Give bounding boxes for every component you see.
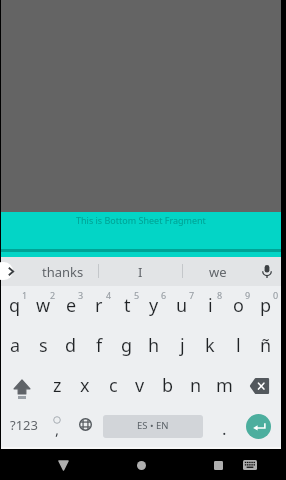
staticText: u	[176, 293, 188, 318]
button[interactable]: w	[29, 286, 57, 326]
button[interactable]: .	[208, 406, 236, 447]
staticText: 8	[217, 289, 223, 301]
button[interactable]: Switch keyboard	[239, 454, 261, 476]
staticText: s	[39, 333, 48, 358]
button[interactable]: k	[196, 326, 224, 366]
button[interactable]: Backspace	[238, 366, 280, 406]
button[interactable]: ñ	[252, 326, 280, 366]
button[interactable]: x	[71, 366, 99, 406]
staticText: d	[65, 333, 77, 358]
button[interactable]: a	[1, 326, 29, 366]
staticText: 6	[161, 289, 167, 301]
staticText: 5	[134, 289, 140, 301]
staticText: a	[10, 333, 21, 358]
staticText: i	[208, 293, 213, 318]
button[interactable]: c	[99, 366, 127, 406]
button[interactable]: t	[113, 286, 141, 326]
button[interactable]: we	[182, 257, 253, 286]
staticText: ñ	[260, 333, 272, 358]
staticText: o	[233, 293, 244, 318]
staticText: h	[148, 333, 160, 358]
staticText: 9	[245, 289, 251, 301]
button[interactable]: thanks	[27, 257, 98, 286]
staticText: n	[190, 373, 202, 398]
button[interactable]: ES • EN	[103, 415, 203, 438]
staticText: I	[138, 263, 143, 281]
button[interactable]: Expand suggestions	[1, 257, 23, 286]
button[interactable]: ?123	[1, 406, 43, 447]
button[interactable]: g	[113, 326, 141, 366]
button[interactable]: I	[98, 257, 182, 286]
button[interactable]: v	[126, 366, 154, 406]
button[interactable]: n	[182, 366, 210, 406]
button[interactable]: l	[224, 326, 252, 366]
staticText: 1	[22, 289, 28, 301]
staticText: This is Bottom Sheet Fragment	[76, 214, 206, 226]
staticText: c	[109, 373, 118, 398]
button[interactable]: Change language	[71, 404, 99, 445]
button[interactable]: j	[168, 326, 196, 366]
button[interactable]: Home	[130, 454, 152, 476]
staticText: f	[96, 333, 103, 358]
staticText: 2	[50, 289, 56, 301]
button[interactable]: y	[140, 286, 168, 326]
staticText: e	[66, 293, 77, 318]
staticText: g	[121, 333, 133, 358]
button[interactable]: p	[252, 286, 280, 326]
staticText: j	[180, 333, 185, 358]
staticText: z	[53, 373, 62, 398]
button[interactable]: o	[224, 286, 252, 326]
button[interactable]: Shift	[1, 366, 43, 406]
button[interactable]: u	[168, 286, 196, 326]
staticText: .	[222, 417, 227, 440]
staticText: ?123	[10, 416, 38, 434]
button[interactable]: h	[140, 326, 168, 366]
button[interactable]: s	[29, 326, 57, 366]
staticText: m	[216, 373, 233, 398]
staticText: ,	[55, 419, 60, 439]
staticText: w	[36, 293, 51, 318]
staticText: k	[205, 333, 215, 358]
button[interactable]: b	[154, 366, 182, 406]
staticText: 0	[273, 289, 279, 301]
staticText: p	[260, 293, 272, 318]
button[interactable]: Enter	[236, 406, 281, 447]
button[interactable]: r	[85, 286, 113, 326]
button[interactable]: Recents	[207, 454, 229, 476]
button[interactable]: d	[57, 326, 85, 366]
button[interactable]: Back	[52, 454, 74, 476]
button[interactable]: q	[1, 286, 29, 326]
staticText: 7	[189, 289, 195, 301]
button[interactable]: Voice input	[253, 257, 281, 286]
staticText: q	[9, 293, 21, 318]
staticText: we	[209, 263, 227, 281]
staticText: v	[135, 373, 145, 398]
button[interactable]: f	[85, 326, 113, 366]
staticText: b	[162, 373, 174, 398]
button[interactable]: i	[196, 286, 224, 326]
staticText: 4	[106, 289, 112, 301]
staticText: x	[80, 373, 90, 398]
button[interactable]: e	[57, 286, 85, 326]
button[interactable]: Emoji and comma	[43, 406, 71, 447]
staticText: 3	[78, 289, 84, 301]
button[interactable]: m	[210, 366, 238, 406]
staticText: thanks	[42, 263, 84, 281]
staticText: y	[149, 293, 159, 318]
button[interactable]: z	[43, 366, 71, 406]
staticText: l	[236, 333, 241, 358]
staticText: ES • EN	[137, 419, 169, 432]
staticText: r	[95, 293, 103, 318]
staticText: t	[124, 293, 131, 318]
